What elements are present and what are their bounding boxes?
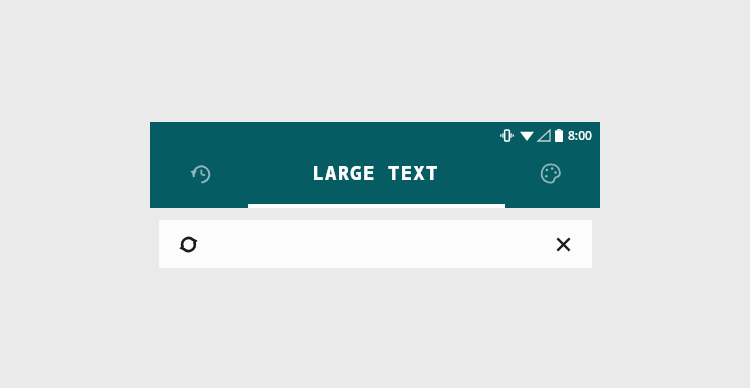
button[interactable]: LARGE TEXT	[246, 148, 504, 198]
button[interactable]: Close	[544, 225, 582, 263]
staticText: 8:00	[568, 127, 592, 143]
button[interactable]: Sync	[169, 225, 207, 263]
button[interactable]: Theme	[528, 151, 572, 195]
button[interactable]: History	[178, 151, 222, 195]
staticText: LARGE TEXT	[312, 160, 439, 186]
